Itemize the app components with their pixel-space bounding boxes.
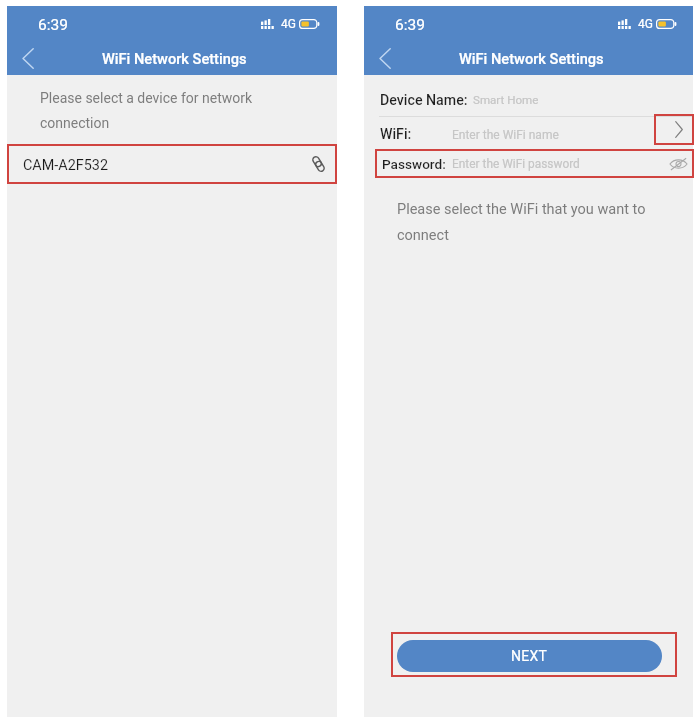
staticText: Enter the WiFi name — [452, 128, 559, 142]
staticText: WiFi Network Settings — [102, 50, 247, 67]
staticText: 6:39 — [395, 16, 425, 34]
staticText: 4G — [281, 17, 296, 31]
staticText: Device Name: — [380, 92, 468, 109]
staticText: Password: — [382, 156, 446, 172]
button[interactable]: Back — [370, 42, 408, 74]
staticText: WiFi Network Settings — [459, 50, 604, 67]
button[interactable]: CAM-A2F532 — [7, 144, 337, 184]
button[interactable]: Back — [13, 42, 51, 74]
staticText: NEXT — [511, 648, 548, 664]
button[interactable]: Choose WiFi network — [654, 114, 694, 145]
button[interactable]: Link device — [305, 151, 329, 177]
button[interactable]: WiFi: — [364, 118, 693, 151]
staticText: CAM-A2F532 — [23, 157, 108, 174]
staticText: Enter the WiFi password — [452, 157, 580, 171]
staticText: 6:39 — [38, 16, 68, 34]
staticText: 4G — [638, 17, 653, 31]
staticText: Please select a device for network conne… — [40, 90, 253, 131]
staticText: Smart Home — [473, 93, 539, 107]
button[interactable]: Device Name: — [364, 83, 693, 117]
button[interactable]: Password: — [375, 149, 694, 178]
staticText: Please select the WiFi that you want to … — [397, 201, 646, 243]
staticText: WiFi: — [380, 126, 412, 143]
button[interactable]: Show password — [666, 153, 690, 175]
button[interactable]: NEXT — [397, 640, 662, 672]
